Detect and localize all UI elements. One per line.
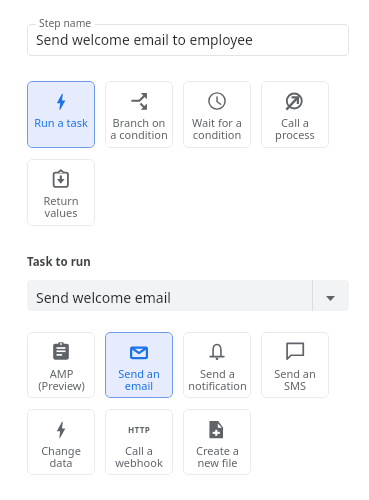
button[interactable]: Change data	[27, 409, 95, 475]
staticText: Send welcome email to employee	[36, 30, 253, 49]
button[interactable]: Create a new file	[183, 409, 251, 475]
staticText: Branch on a condition	[110, 115, 168, 142]
button[interactable]: Call a process	[261, 81, 329, 148]
staticText: Call a webhook	[115, 443, 163, 470]
staticText: Wait for a condition	[192, 115, 242, 142]
staticText: Task to run	[27, 254, 91, 270]
staticText: Create a new file	[196, 443, 239, 470]
button[interactable]: HTTP	[105, 409, 173, 475]
button[interactable]: Send an email	[105, 332, 173, 398]
button[interactable]: Return values	[27, 159, 95, 226]
button[interactable]: Send welcome email to employee	[27, 24, 349, 56]
staticText: Run a task	[34, 115, 88, 130]
staticText: Send welcome email	[36, 288, 171, 307]
button[interactable]: Send a notification	[183, 332, 251, 398]
button[interactable]: Send an SMS	[261, 332, 329, 398]
staticText: Return values	[43, 193, 79, 220]
button[interactable]: Wait for a condition	[183, 81, 251, 148]
staticText: Step name	[39, 16, 92, 30]
button[interactable]: AMP (Preview)	[27, 332, 95, 398]
staticText: AMP (Preview)	[38, 366, 85, 393]
button[interactable]: Run a task	[27, 81, 95, 148]
staticText: Call a process	[275, 115, 315, 142]
staticText: Send a notification	[188, 366, 247, 393]
button[interactable]: Send welcome email	[27, 280, 349, 311]
staticText: Send an email	[118, 366, 160, 393]
staticText: Change data	[41, 443, 81, 470]
staticText: HTTP	[128, 424, 151, 435]
button[interactable]: Branch on a condition	[105, 81, 173, 148]
staticText: Send an SMS	[274, 366, 316, 393]
